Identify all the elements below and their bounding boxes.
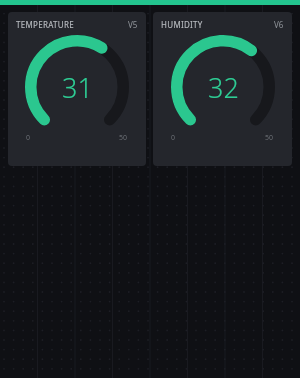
staticText: V5 <box>128 19 138 30</box>
staticText: 50 <box>119 133 128 143</box>
staticText: HUMIDITY <box>161 19 203 30</box>
button[interactable]: HUMIDITY <box>153 12 292 166</box>
staticText: 50 <box>265 133 274 143</box>
staticText: 0 <box>26 133 31 143</box>
staticText: V6 <box>274 19 284 30</box>
staticText: 0 <box>171 133 176 143</box>
staticText: TEMPERATURE <box>16 19 74 30</box>
button[interactable]: TEMPERATURE <box>8 12 146 166</box>
staticText: 32 <box>208 69 239 106</box>
staticText: 31 <box>62 69 93 106</box>
